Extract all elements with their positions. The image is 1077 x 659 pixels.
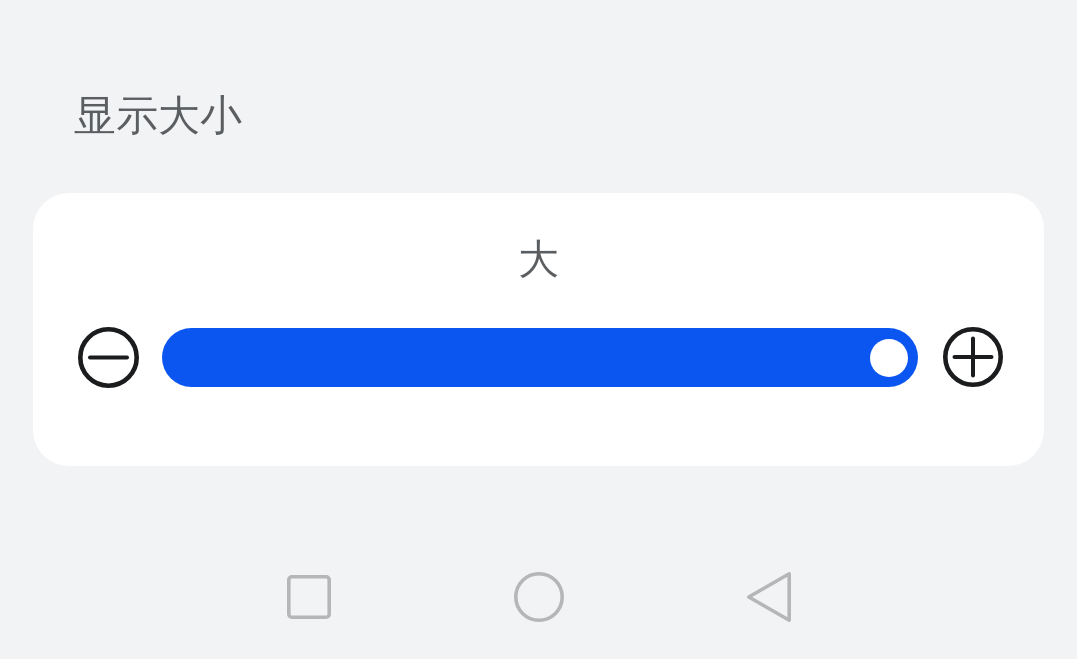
button[interactable]: Increase display size [931, 315, 1015, 399]
button[interactable]: Display size slider [162, 328, 918, 387]
button[interactable]: Home [424, 542, 654, 652]
button[interactable]: Recent apps [194, 542, 424, 652]
button[interactable]: Decrease display size [66, 315, 150, 399]
button[interactable]: Back [654, 542, 884, 652]
staticText: 大 [518, 234, 559, 286]
staticText: 显示大小 [74, 90, 242, 143]
